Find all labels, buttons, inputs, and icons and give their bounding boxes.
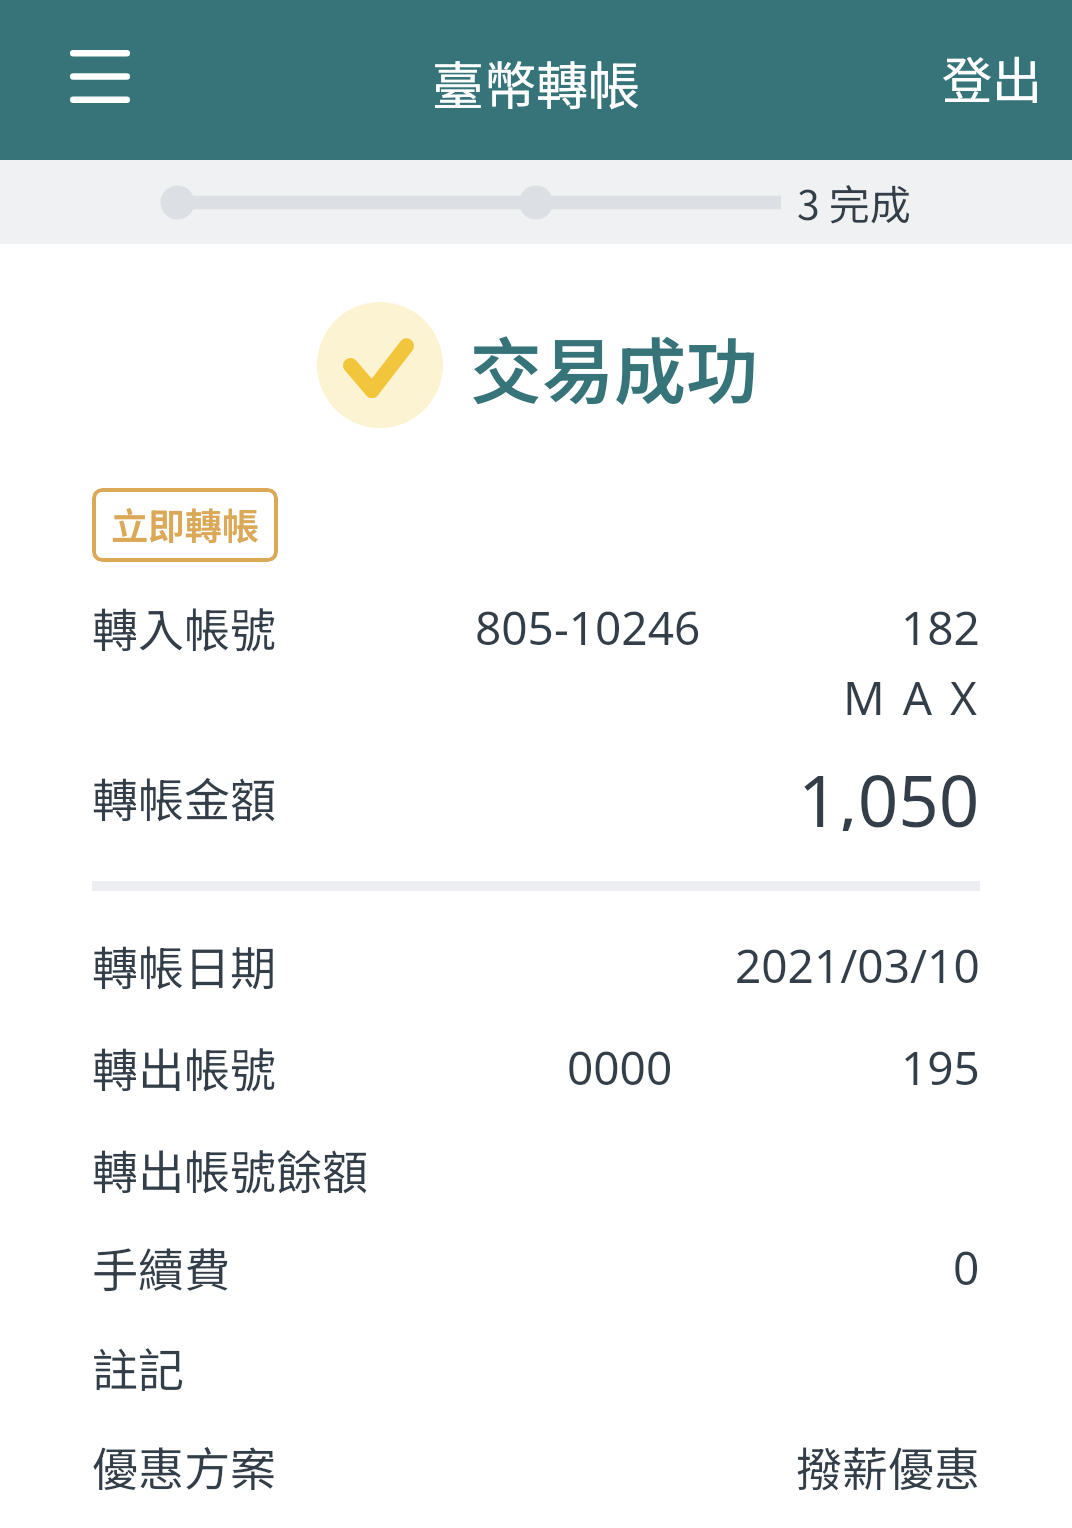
button[interactable]: 立即轉帳: [92, 488, 278, 562]
staticText: M A X: [843, 666, 980, 729]
staticText: 手續費: [92, 1234, 230, 1301]
staticText: 註記: [92, 1334, 184, 1401]
staticText: 805-10246: [475, 596, 701, 659]
staticText: 優惠方案: [92, 1433, 276, 1500]
staticText: 轉入帳號: [92, 594, 276, 661]
staticText: 轉出帳號: [92, 1034, 276, 1101]
button[interactable]: 登出: [922, 27, 1072, 127]
staticText: 立即轉帳: [111, 497, 259, 551]
button[interactable]: Menu: [41, 26, 159, 126]
staticText: 0000: [567, 1036, 673, 1099]
staticText: 轉帳金額: [92, 764, 276, 831]
staticText: 1,050: [798, 751, 980, 831]
staticText: 臺幣轉帳: [432, 45, 641, 120]
staticText: 195: [901, 1036, 980, 1099]
staticText: 0: [953, 1236, 980, 1299]
staticText: 3 完成: [797, 172, 911, 231]
staticText: 轉出帳號餘額: [92, 1136, 368, 1203]
staticText: 轉帳日期: [92, 932, 276, 999]
staticText: 撥薪優惠: [796, 1433, 980, 1500]
staticText: 交易成功: [470, 314, 759, 418]
staticText: 2021/03/10: [735, 934, 980, 997]
staticText: 182: [901, 596, 980, 659]
staticText: 登出: [942, 41, 1042, 113]
